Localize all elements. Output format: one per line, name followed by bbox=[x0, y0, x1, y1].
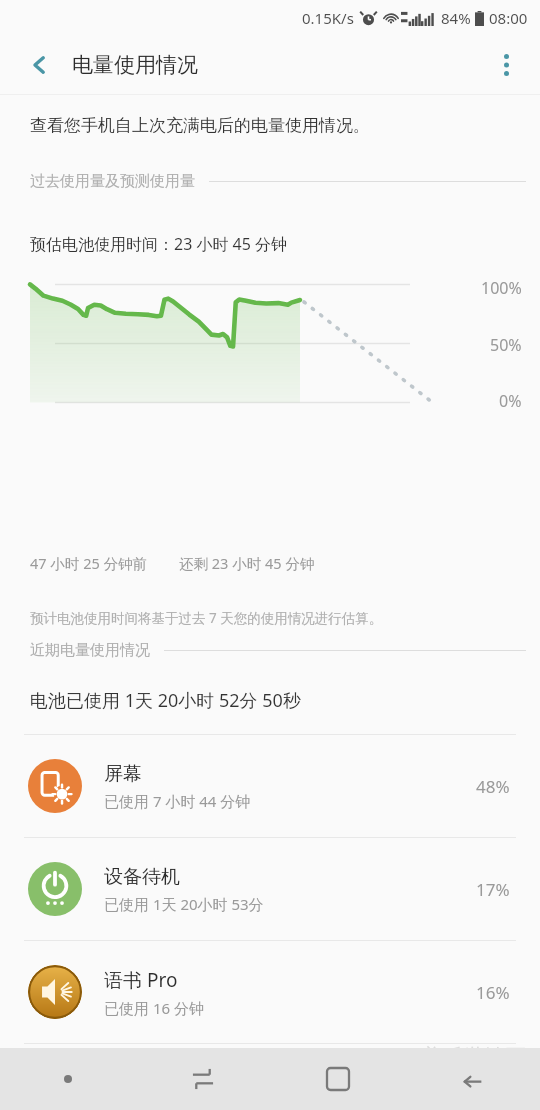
button[interactable]: Back bbox=[405, 1048, 540, 1110]
button[interactable]: 设备待机 bbox=[0, 838, 540, 940]
staticText: 电量使用情况 bbox=[72, 52, 198, 78]
staticText: @GC_DTH6CEI bbox=[396, 1072, 526, 1098]
button[interactable]: Recents bbox=[135, 1048, 270, 1110]
staticText: 盖乐世社区 bbox=[421, 1044, 526, 1070]
staticText: 18% bbox=[476, 1066, 510, 1089]
staticText: 0.15K/s bbox=[302, 8, 354, 28]
staticText: 语书 Pro bbox=[104, 967, 178, 993]
staticText: Android 系统应用 bbox=[104, 1064, 257, 1090]
staticText: 电池已使用 1天 20小时 52分 50秒 bbox=[30, 688, 301, 713]
staticText: 48% bbox=[476, 775, 510, 798]
staticText: 16% bbox=[476, 981, 510, 1004]
staticText: 设备待机 bbox=[104, 865, 180, 889]
button[interactable]: Android 系统应用 bbox=[0, 1044, 540, 1110]
staticText: 还剩 23 小时 45 分钟 bbox=[179, 553, 315, 573]
staticText: 已使用 16 分钟 bbox=[104, 998, 204, 1018]
staticText: 已使用 7 小时 44 分钟 bbox=[104, 791, 251, 811]
button[interactable]: Home bbox=[270, 1048, 405, 1110]
staticText: 0% bbox=[499, 390, 522, 412]
staticText: 08:00 bbox=[489, 8, 528, 28]
staticText: 17% bbox=[476, 878, 510, 901]
staticText: 50% bbox=[490, 334, 522, 356]
staticText: 近期电量使用情况 bbox=[30, 641, 150, 660]
button[interactable]: 语书 Pro bbox=[0, 941, 540, 1043]
staticText: 84% bbox=[441, 8, 471, 28]
button[interactable]: 屏幕 bbox=[0, 735, 540, 837]
staticText: 预计电池使用时间将基于过去 7 天您的使用情况进行估算。 bbox=[30, 609, 383, 627]
staticText: 屏幕 bbox=[104, 762, 142, 786]
button[interactable]: Back bbox=[18, 43, 62, 87]
staticText: 查看您手机自上次充满电后的电量使用情况。 bbox=[30, 115, 370, 136]
button[interactable]: More options bbox=[484, 43, 528, 87]
staticText: 100% bbox=[481, 277, 522, 299]
staticText: 47 小时 25 分钟前 bbox=[30, 553, 147, 573]
staticText: 预估电池使用时间：23 小时 45 分钟 bbox=[30, 233, 288, 255]
button[interactable]: Menu bbox=[0, 1048, 135, 1110]
staticText: 已使用 1天 20小时 53分 bbox=[104, 894, 264, 914]
staticText: 过去使用量及预测使用量 bbox=[30, 172, 195, 191]
